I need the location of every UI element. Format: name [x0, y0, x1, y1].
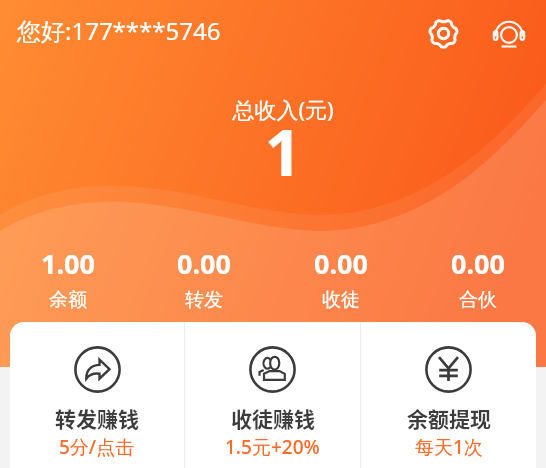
staticText: 余额提现	[407, 403, 491, 433]
staticText: 1	[10, 108, 546, 195]
button[interactable]: 余额提现	[361, 322, 536, 468]
button[interactable]: 0.00	[409, 245, 546, 312]
staticText: 您好:177****5746	[17, 14, 221, 47]
staticText: 转发赚钱	[55, 403, 139, 433]
button[interactable]: 1.00	[0, 245, 136, 312]
staticText: 5分/点击	[59, 434, 135, 460]
button[interactable]: 0.00	[136, 245, 272, 312]
button[interactable]: 收徒赚钱	[185, 322, 360, 468]
staticText: 收徒赚钱	[231, 403, 315, 433]
staticText: 0.00	[177, 245, 231, 282]
staticText: 转发	[185, 288, 223, 312]
staticText: 0.00	[314, 245, 368, 282]
button[interactable]: Customer service	[487, 11, 531, 55]
button[interactable]: 0.00	[272, 245, 409, 312]
button[interactable]: Settings	[421, 11, 465, 55]
staticText: 0.00	[451, 245, 505, 282]
button[interactable]: 转发赚钱	[10, 322, 184, 468]
staticText: 总收入(元)	[10, 94, 546, 124]
staticText: 1.5元+20%	[225, 434, 320, 460]
staticText: 余额	[49, 288, 87, 312]
staticText: 每天1次	[415, 434, 483, 460]
staticText: 1.00	[41, 245, 95, 282]
staticText: 收徒	[322, 288, 360, 312]
staticText: 合伙	[459, 288, 497, 312]
